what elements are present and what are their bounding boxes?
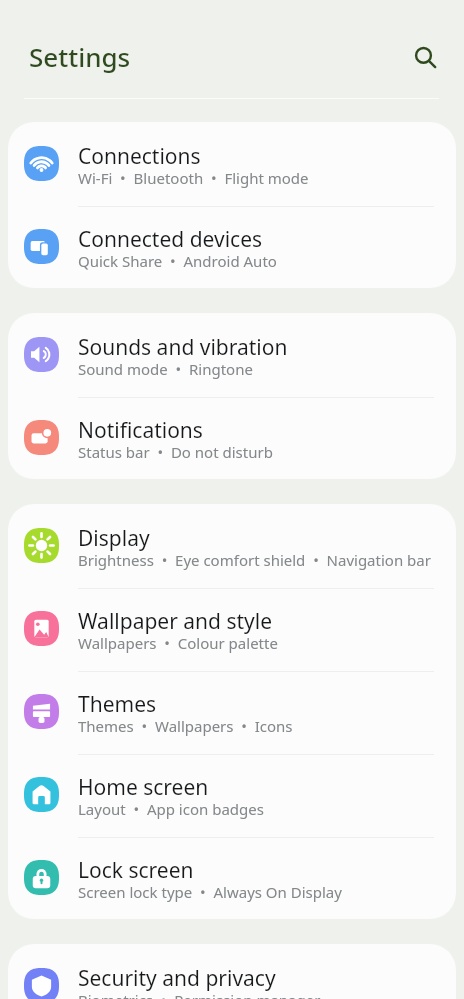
staticText: Settings (29, 39, 131, 74)
staticText: Notifications (78, 416, 203, 445)
staticText: Themes • Wallpapers • Icons (78, 716, 293, 736)
staticText: Screen lock type • Always On Display (78, 882, 342, 902)
button[interactable]: Display (8, 504, 456, 587)
button[interactable]: Notifications (8, 396, 456, 479)
button[interactable]: Connections (8, 122, 456, 205)
button[interactable]: Home screen (8, 753, 456, 836)
button[interactable]: Themes (8, 670, 456, 753)
staticText: Sound mode • Ringtone (78, 359, 253, 379)
staticText: Lock screen (78, 856, 194, 885)
button[interactable]: Connected devices (8, 205, 456, 288)
staticText: Security and privacy (78, 964, 276, 993)
staticText: Status bar • Do not disturb (78, 442, 273, 462)
staticText: Display (78, 524, 150, 553)
staticText: Wi-Fi • Bluetooth • Flight mode (78, 168, 309, 188)
staticText: Brightness • Eye comfort shield • Naviga… (78, 550, 431, 570)
button[interactable]: Wallpaper and style (8, 587, 456, 670)
staticText: Quick Share • Android Auto (78, 251, 277, 271)
staticText: Sounds and vibration (78, 333, 288, 362)
button[interactable]: Sounds and vibration (8, 313, 456, 396)
staticText: Connected devices (78, 225, 263, 254)
button[interactable]: Lock screen (8, 836, 456, 919)
staticText: Connections (78, 142, 201, 171)
staticText: Home screen (78, 773, 209, 802)
staticText: Biometrics • Permission manager (78, 990, 321, 999)
button[interactable]: Security and privacy (8, 944, 456, 999)
staticText: Themes (78, 690, 157, 719)
button[interactable]: Search (400, 31, 448, 79)
staticText: Wallpaper and style (78, 607, 273, 636)
staticText: Layout • App icon badges (78, 799, 264, 819)
staticText: Wallpapers • Colour palette (78, 633, 278, 653)
